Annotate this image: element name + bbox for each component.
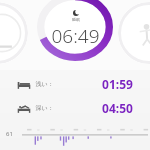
button[interactable]: Previous card [0, 2, 28, 64]
button[interactable]: Next card [118, 2, 150, 64]
staticText: 睡眠 [72, 17, 80, 22]
button[interactable]: Sleep summary [36, 0, 114, 62]
staticText: 浅い： [35, 80, 54, 88]
staticText: 04:50 [102, 100, 133, 116]
staticText: 61 [6, 130, 13, 138]
button[interactable]: 深い： [17, 100, 133, 116]
button[interactable]: 浅い： [17, 76, 133, 92]
staticText: 01:59 [102, 76, 133, 92]
staticText: 深い： [35, 104, 54, 112]
staticText: 06:49 [51, 23, 100, 49]
